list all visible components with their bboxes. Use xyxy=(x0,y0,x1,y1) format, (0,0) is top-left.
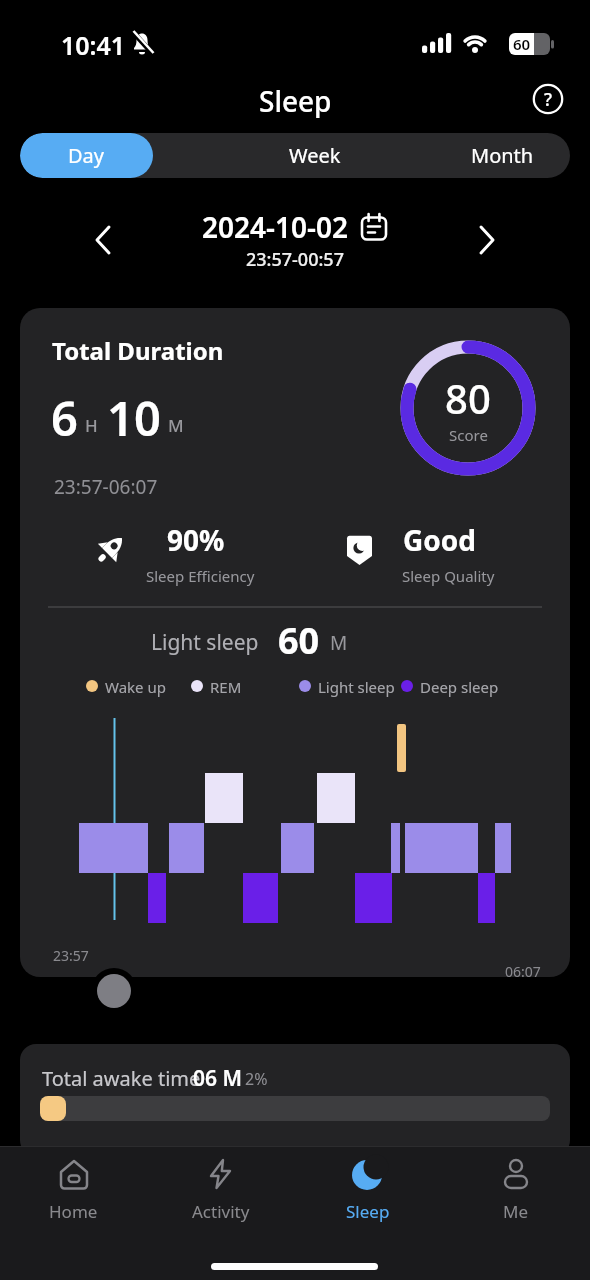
staticText: M xyxy=(330,630,348,656)
staticText: 6 xyxy=(51,386,78,450)
staticText: Light sleep xyxy=(151,628,259,657)
staticText: H xyxy=(85,414,98,437)
button[interactable] xyxy=(86,222,122,258)
staticText: Total awake time xyxy=(42,1065,201,1092)
staticText: 80 xyxy=(445,371,491,425)
staticText: Good xyxy=(403,521,476,559)
staticText: 2024-10-02 xyxy=(202,208,349,246)
staticText: ? xyxy=(544,87,553,112)
staticText: Home xyxy=(49,1200,98,1223)
staticText: Sleep Quality xyxy=(402,566,495,586)
staticText: Deep sleep xyxy=(420,677,499,697)
button[interactable]: Me xyxy=(471,1156,561,1236)
button[interactable]: ? xyxy=(532,83,564,115)
button[interactable]: Home xyxy=(28,1156,118,1236)
staticText: 23:57-00:57 xyxy=(246,247,344,271)
button[interactable] xyxy=(97,974,131,1008)
staticText: Month xyxy=(471,142,534,169)
staticText: 10:41 xyxy=(61,28,126,62)
button[interactable]: Week xyxy=(255,133,375,178)
staticText: 2% xyxy=(245,1068,268,1090)
staticText: 23:57 xyxy=(53,946,89,965)
button[interactable]: 2024-10-02 xyxy=(0,208,590,246)
staticText: Score xyxy=(449,425,488,445)
staticText: Day xyxy=(68,142,105,169)
staticText: Week xyxy=(289,142,341,169)
button[interactable]: Month xyxy=(442,133,562,178)
button[interactable]: Sleep xyxy=(323,1156,413,1236)
button[interactable] xyxy=(468,222,504,258)
staticText: 23:57-06:07 xyxy=(54,474,158,500)
staticText: 06 M xyxy=(193,1064,242,1093)
staticText: Sleep xyxy=(346,1200,390,1223)
staticText: 90% xyxy=(167,521,225,559)
staticText: 10 xyxy=(107,386,161,450)
staticText: REM xyxy=(210,677,242,697)
staticText: 60 xyxy=(513,34,531,54)
button[interactable]: Activity xyxy=(176,1156,266,1236)
staticText: Sleep xyxy=(259,82,332,118)
staticText: Total Duration xyxy=(52,334,224,367)
staticText: Wake up xyxy=(105,677,166,697)
staticText: 06:07 xyxy=(505,962,541,977)
staticText: Sleep Efficiency xyxy=(146,566,255,586)
staticText: 60 xyxy=(278,616,320,665)
staticText: M xyxy=(168,414,184,437)
staticText: Light sleep xyxy=(318,677,395,697)
button[interactable]: Day xyxy=(20,133,153,178)
staticText: Activity xyxy=(192,1200,250,1223)
staticText: Me xyxy=(503,1200,529,1223)
